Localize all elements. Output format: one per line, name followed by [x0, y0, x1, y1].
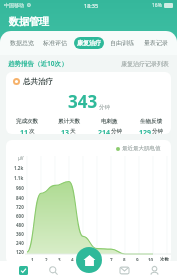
staticText: 16%	[152, 2, 162, 9]
staticText: 康复治疗记录列表	[121, 60, 169, 68]
staticText: 累计天数	[58, 118, 80, 125]
button[interactable]: 最近最大肌电值	[6, 140, 171, 264]
staticText: μV	[18, 155, 24, 161]
staticText: 总共治疗	[23, 77, 53, 86]
button[interactable]: 数据总览	[7, 37, 37, 49]
button[interactable]: 总共治疗	[6, 72, 171, 134]
staticText: 240	[16, 240, 24, 246]
staticText: 中国移动 ⚙	[4, 2, 32, 9]
staticText: 数据总览	[10, 39, 34, 47]
staticText: 数据管理	[9, 15, 49, 28]
staticText: 343	[68, 90, 98, 113]
button[interactable]: 康复治疗记录列表	[121, 60, 169, 68]
staticText: 600	[16, 213, 24, 219]
staticText: 13	[61, 128, 70, 134]
staticText: 最近最大肌电值	[122, 145, 161, 152]
staticText: 完成次数	[16, 118, 38, 125]
staticText: 次	[29, 128, 35, 134]
staticText: 960	[16, 185, 24, 191]
button[interactable]: Search	[46, 263, 60, 277]
button[interactable]: 电刺激	[89, 118, 130, 134]
staticText: 1	[31, 257, 34, 263]
button[interactable]: Profile	[147, 263, 161, 277]
staticText: 214	[98, 128, 111, 134]
staticText: 129	[139, 128, 152, 134]
staticText: 次数	[160, 257, 169, 263]
staticText: 3	[58, 257, 61, 263]
button[interactable]: 累计天数	[48, 118, 89, 134]
staticText: 840	[16, 195, 24, 201]
staticText: 9	[136, 257, 139, 263]
staticText: 360	[16, 231, 24, 237]
staticText: 11	[20, 128, 29, 134]
staticText: 分钟	[99, 104, 110, 111]
button[interactable]: 量表记录	[141, 37, 171, 49]
staticText: 量表记录	[144, 39, 168, 47]
button[interactable]: 自由训练	[107, 37, 137, 49]
button[interactable]: Messages	[117, 263, 131, 277]
staticText: 2	[45, 257, 48, 263]
staticText: 标准评估	[43, 39, 67, 47]
staticText: 5	[84, 257, 87, 263]
staticText: 1.2k	[14, 165, 24, 171]
button[interactable]: 趋势报告（近10次）	[8, 59, 68, 68]
button[interactable]: 康复治疗	[74, 37, 104, 49]
staticText: 720	[16, 204, 24, 210]
staticText: 480	[16, 222, 24, 228]
staticText: 分钟	[152, 128, 163, 134]
staticText: 1.1k	[14, 175, 24, 181]
staticText: 自由训练	[110, 39, 134, 47]
staticText: 7	[110, 257, 113, 263]
staticText: 分钟	[111, 128, 122, 134]
staticText: 18:35	[84, 2, 99, 9]
staticText: 趋势报告（近10次）	[8, 59, 68, 68]
staticText: 120	[16, 249, 24, 255]
button[interactable]: Tasks	[16, 263, 30, 277]
staticText: 8	[123, 257, 126, 263]
staticText: 4	[71, 257, 74, 263]
staticText: 天	[70, 128, 76, 134]
button[interactable]: 生物反馈	[130, 118, 171, 134]
button[interactable]: 完成次数	[6, 118, 48, 134]
button[interactable]: 标准评估	[40, 37, 70, 49]
staticText: 10	[148, 257, 154, 263]
staticText: 生物反馈	[140, 118, 162, 125]
button[interactable]: Home	[76, 247, 102, 273]
staticText: 电刺激	[101, 118, 118, 125]
staticText: 康复治疗	[77, 39, 101, 47]
